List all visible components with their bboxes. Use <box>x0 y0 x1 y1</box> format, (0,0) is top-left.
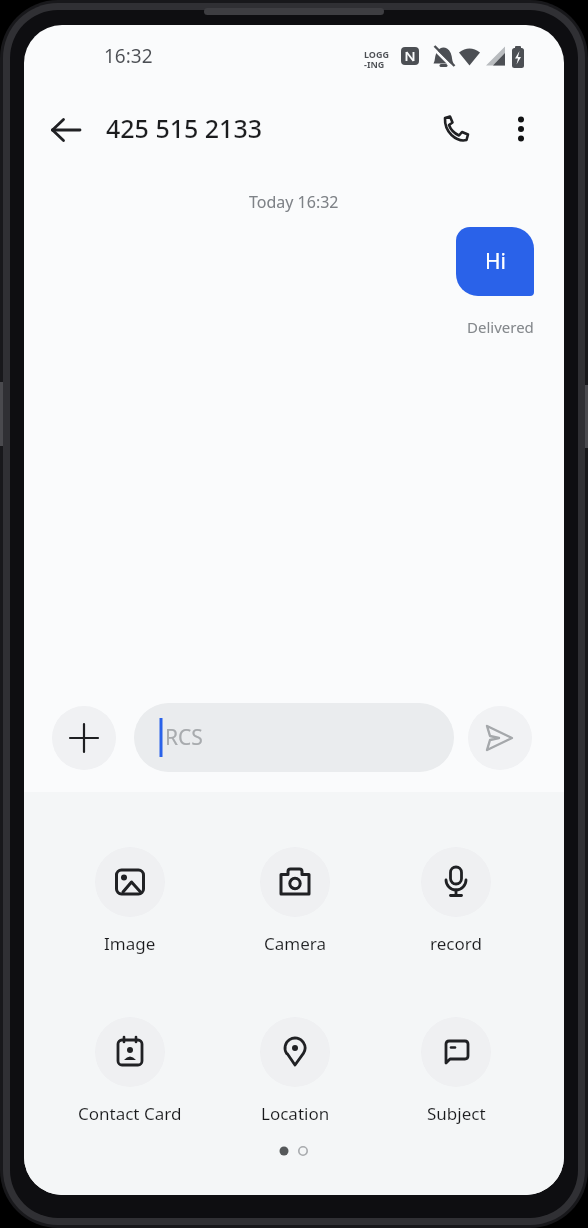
button[interactable] <box>42 106 90 154</box>
staticText: LOGG -ING <box>364 48 390 70</box>
staticText: Subject <box>427 1102 486 1125</box>
staticText: Today 16:32 <box>249 191 339 213</box>
staticText: 16:32 <box>104 43 153 69</box>
staticText: Delivered <box>467 317 534 337</box>
button[interactable] <box>52 706 116 770</box>
staticText: Hi <box>485 247 506 276</box>
staticText: 425 515 2133 <box>106 111 263 145</box>
button[interactable] <box>260 847 330 917</box>
staticText: Camera <box>264 932 326 955</box>
staticText: RCS <box>165 723 203 752</box>
button[interactable]: RCS <box>134 703 454 772</box>
button[interactable] <box>421 847 491 917</box>
button[interactable] <box>421 1017 491 1087</box>
button[interactable] <box>95 847 165 917</box>
staticText: Image <box>104 932 156 955</box>
button[interactable] <box>468 706 532 770</box>
button[interactable] <box>260 1017 330 1087</box>
staticText: record <box>430 932 482 955</box>
button[interactable] <box>497 105 545 153</box>
staticText: Contact Card <box>78 1102 182 1125</box>
button[interactable]: Hi <box>456 227 534 296</box>
button[interactable] <box>432 105 480 153</box>
button[interactable] <box>95 1017 165 1087</box>
staticText: Location <box>261 1102 330 1125</box>
